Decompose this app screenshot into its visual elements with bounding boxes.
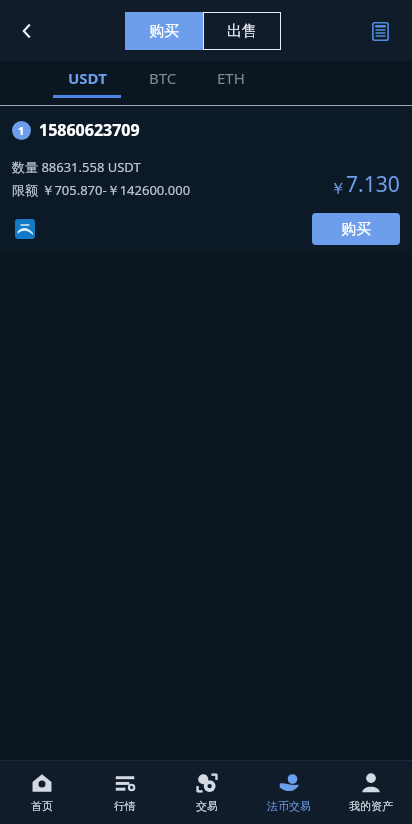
staticText: 15860623709 [39,119,140,141]
staticText: 1 [18,123,25,138]
button[interactable]: 首页 [0,761,83,824]
staticText: 购买 [149,22,179,41]
button[interactable]: 出售 [203,12,281,50]
button[interactable]: 我的资产 [330,761,412,824]
button[interactable]: Alipay [15,219,35,239]
staticText: 交易 [196,799,218,813]
button[interactable]: 法币交易 [248,761,330,824]
button[interactable]: ETH [200,61,262,105]
button[interactable]: Back [6,10,48,52]
button[interactable]: USDT [48,61,126,105]
staticText: 限额 ￥705.870-￥142600.000 [12,181,191,199]
staticText: USDT [68,68,107,88]
button[interactable]: 交易 [166,761,248,824]
staticText: 数量 88631.558 USDT [12,158,141,176]
staticText: 法币交易 [267,799,311,813]
button[interactable]: 购买 [125,12,203,50]
button[interactable]: BTC [132,61,194,105]
button[interactable]: 购买 [312,213,400,245]
staticText: BTC [149,68,177,88]
staticText: 我的资产 [349,799,393,813]
staticText: ￥ [330,179,346,199]
staticText: 行情 [114,799,136,813]
staticText: 出售 [227,22,257,41]
button[interactable]: 行情 [83,761,166,824]
staticText: 首页 [31,799,53,813]
button[interactable]: 1 [0,106,412,251]
staticText: 7.130 [346,170,400,199]
staticText: 购买 [341,220,371,239]
button[interactable]: Orders [360,11,400,51]
staticText: ETH [217,68,245,88]
